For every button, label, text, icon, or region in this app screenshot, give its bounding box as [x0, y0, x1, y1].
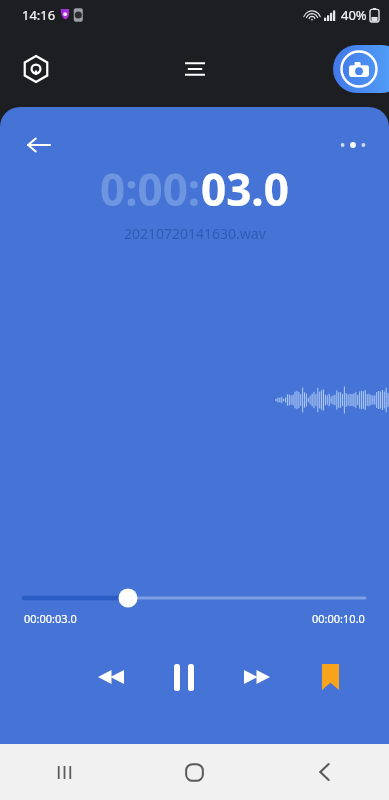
staticText: 00:00:10.0	[312, 611, 365, 626]
staticText: 20210720141630.wav	[124, 224, 266, 243]
button[interactable]: Back	[259, 744, 389, 800]
button[interactable]: Camera	[333, 45, 389, 93]
button[interactable]: Recents	[0, 744, 129, 800]
button[interactable]: Rewind	[88, 654, 134, 700]
button[interactable]: Home	[129, 744, 259, 800]
button[interactable]: More options	[331, 123, 375, 167]
button[interactable]: List	[171, 45, 219, 93]
staticText: 03.0	[201, 159, 289, 219]
staticText: 0:00:	[100, 159, 201, 219]
button[interactable]: Bookmark	[307, 654, 353, 700]
button[interactable]: Seek bar	[24, 585, 365, 611]
button[interactable]: Pause	[161, 654, 207, 700]
staticText: 40%	[341, 6, 367, 24]
button[interactable]: Fast forward	[234, 654, 280, 700]
button[interactable]: Back	[16, 123, 60, 167]
button[interactable]: Record	[14, 47, 58, 91]
staticText: 14:16	[22, 6, 56, 24]
staticText: 00:00:03.0	[24, 611, 77, 626]
